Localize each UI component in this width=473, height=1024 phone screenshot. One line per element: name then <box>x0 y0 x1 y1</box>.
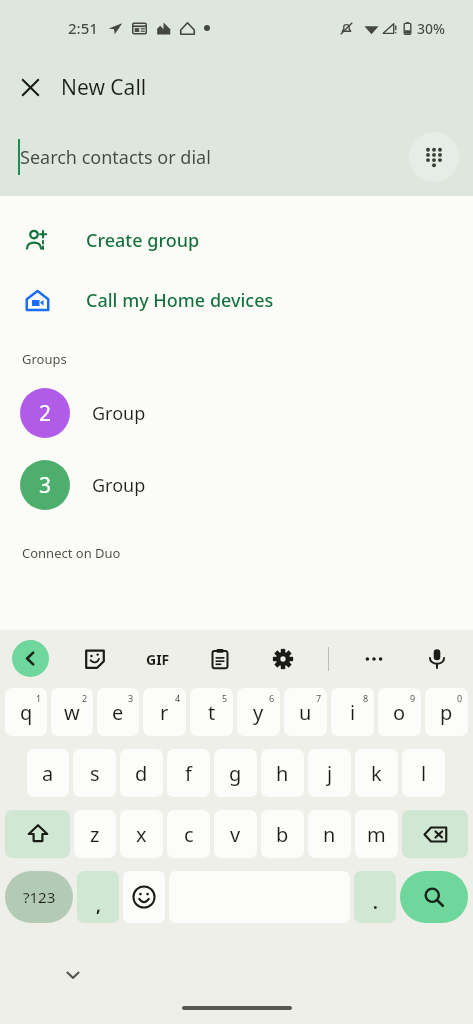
staticText: 5 <box>222 692 228 704</box>
button[interactable]: d <box>120 749 163 797</box>
button[interactable]: r <box>143 688 186 736</box>
button[interactable]: Search <box>400 871 468 923</box>
staticText: r <box>160 699 169 726</box>
staticText: z <box>90 821 100 848</box>
staticText: 2:51 <box>68 18 98 38</box>
staticText: 2 <box>82 692 88 704</box>
staticText: e <box>112 699 124 726</box>
staticText: q <box>20 699 33 726</box>
button[interactable]: Settings <box>265 641 301 677</box>
button[interactable]: z <box>74 810 116 858</box>
button[interactable]: u <box>284 688 327 736</box>
staticText: Connect on Duo <box>22 544 121 562</box>
button[interactable]: c <box>167 810 210 858</box>
staticText: w <box>64 699 80 726</box>
staticText: s <box>90 760 100 787</box>
button[interactable]: h <box>261 749 304 797</box>
button[interactable]: l <box>402 749 445 797</box>
button[interactable]: i <box>331 688 374 736</box>
button[interactable]: , <box>77 871 119 923</box>
staticText: 6 <box>269 692 275 704</box>
staticText: 9 <box>410 692 416 704</box>
button[interactable]: a <box>27 749 69 797</box>
button[interactable]: w <box>51 688 93 736</box>
button[interactable]: Hide keyboard <box>58 960 88 990</box>
staticText: i <box>350 699 356 726</box>
button[interactable]: Clipboard <box>202 641 238 677</box>
staticText: 7 <box>316 692 322 704</box>
staticText: d <box>135 760 148 787</box>
staticText: Search contacts or dial <box>20 145 211 170</box>
button[interactable]: n <box>308 810 351 858</box>
button[interactable]: Call my Home devices <box>0 278 473 322</box>
staticText: 4 <box>175 692 181 704</box>
staticText: Groups <box>22 350 67 368</box>
staticText: ?123 <box>23 887 56 907</box>
staticText: g <box>229 760 242 787</box>
button[interactable]: s <box>73 749 116 797</box>
staticText: t <box>208 699 216 726</box>
staticText: h <box>276 760 289 787</box>
button[interactable]: y <box>237 688 280 736</box>
button[interactable]: q <box>5 688 47 736</box>
button[interactable]: f <box>167 749 210 797</box>
staticText: . <box>373 891 378 914</box>
staticText: Call my Home devices <box>86 288 274 313</box>
button[interactable]: j <box>308 749 351 797</box>
staticText: 1 <box>36 692 42 704</box>
button[interactable]: 3 <box>0 456 473 514</box>
staticText: Group <box>92 401 146 426</box>
button[interactable]: t <box>190 688 233 736</box>
staticText: o <box>393 699 406 726</box>
staticText: u <box>299 699 312 726</box>
staticText: f <box>185 760 192 787</box>
button[interactable]: Shift <box>5 810 70 858</box>
button[interactable]: Sticker <box>77 641 113 677</box>
staticText: a <box>42 760 54 787</box>
button[interactable]: g <box>214 749 257 797</box>
button[interactable]: ?123 <box>5 871 73 923</box>
staticText: j <box>327 760 333 787</box>
staticText: 0 <box>457 692 463 704</box>
staticText: c <box>184 821 194 848</box>
staticText: v <box>230 821 241 848</box>
button[interactable]: p <box>425 688 468 736</box>
staticText: 2 <box>39 399 52 428</box>
staticText: n <box>323 821 336 848</box>
button[interactable]: b <box>261 810 304 858</box>
button[interactable]: More <box>356 641 392 677</box>
staticText: Create group <box>86 228 200 253</box>
staticText: l <box>421 760 427 787</box>
button[interactable]: . <box>354 871 396 923</box>
staticText: 30% <box>417 19 445 38</box>
button[interactable]: o <box>378 688 421 736</box>
staticText: k <box>371 760 382 787</box>
button[interactable]: Backspace <box>402 810 468 858</box>
staticText: b <box>276 821 289 848</box>
staticText: x <box>136 821 147 848</box>
staticText: m <box>367 821 386 848</box>
button[interactable]: x <box>120 810 163 858</box>
button[interactable]: Create group <box>0 218 473 262</box>
button[interactable]: m <box>355 810 398 858</box>
staticText: 3 <box>128 692 134 704</box>
staticText: Group <box>92 473 146 498</box>
staticText: p <box>440 699 453 726</box>
button[interactable]: Back <box>12 640 49 677</box>
button[interactable]: Emoji <box>123 871 165 923</box>
button[interactable]: e <box>97 688 139 736</box>
staticText: New Call <box>61 73 147 102</box>
button[interactable]: k <box>355 749 398 797</box>
button[interactable]: Voice input <box>419 641 455 677</box>
staticText: 8 <box>363 692 369 704</box>
staticText: 3 <box>39 471 52 500</box>
button[interactable]: v <box>214 810 257 858</box>
button[interactable]: 2 <box>0 384 473 442</box>
staticText: , <box>96 894 101 917</box>
staticText: y <box>253 699 264 726</box>
staticText: GIF <box>146 650 170 669</box>
button[interactable]: Close <box>8 65 52 109</box>
button[interactable]: GIF <box>141 642 175 676</box>
button[interactable]: Dialpad <box>409 132 459 182</box>
